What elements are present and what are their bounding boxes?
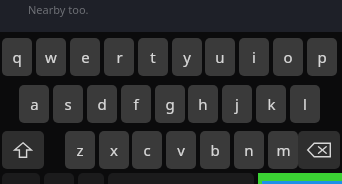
button[interactable]: e: [70, 38, 100, 76]
button[interactable]: r: [104, 38, 134, 76]
staticText: a: [30, 94, 39, 114]
button[interactable]: g: [155, 85, 185, 123]
button[interactable]: c: [132, 131, 162, 169]
button[interactable]: Backspace: [298, 131, 340, 169]
button[interactable]: b: [200, 131, 230, 169]
button[interactable]: s: [53, 85, 83, 123]
staticText: g: [165, 94, 175, 114]
staticText: t: [150, 47, 156, 67]
staticText: c: [143, 140, 151, 160]
staticText: x: [110, 140, 118, 160]
staticText: y: [183, 47, 191, 67]
button[interactable]: f: [121, 85, 151, 123]
staticText: n: [244, 140, 254, 160]
staticText: b: [210, 140, 220, 160]
staticText: w: [45, 47, 57, 67]
button[interactable]: Nearby too.: [28, 1, 118, 17]
staticText: l: [303, 94, 307, 114]
staticText: z: [76, 140, 84, 160]
button[interactable]: t: [138, 38, 168, 76]
staticText: p: [317, 47, 327, 67]
staticText: h: [198, 94, 208, 114]
staticText: f: [133, 94, 139, 114]
button[interactable]: Enter: [258, 173, 342, 184]
staticText: v: [177, 140, 185, 160]
staticText: j: [235, 94, 239, 114]
button[interactable]: a: [19, 85, 49, 123]
staticText: k: [267, 94, 276, 114]
button[interactable]: Shift: [2, 131, 44, 169]
button[interactable]: z: [65, 131, 95, 169]
staticText: q: [12, 47, 22, 67]
button[interactable]: p: [307, 38, 337, 76]
button[interactable]: w: [36, 38, 66, 76]
button[interactable]: h: [188, 85, 218, 123]
button[interactable]: k: [256, 85, 286, 123]
button[interactable]: u: [205, 38, 235, 76]
button[interactable]: q: [2, 38, 32, 76]
staticText: o: [283, 47, 293, 67]
button[interactable]: m: [268, 131, 298, 169]
button[interactable]: o: [273, 38, 303, 76]
staticText: e: [81, 47, 90, 67]
staticText: m: [276, 140, 291, 160]
staticText: i: [252, 47, 256, 67]
button[interactable]: j: [222, 85, 252, 123]
staticText: s: [64, 94, 72, 114]
staticText: Nearby too.: [28, 2, 89, 17]
staticText: u: [215, 47, 225, 67]
button[interactable]: n: [234, 131, 264, 169]
button[interactable]: x: [99, 131, 129, 169]
button[interactable]: l: [290, 85, 320, 123]
button[interactable]: v: [166, 131, 196, 169]
staticText: r: [116, 47, 123, 67]
button[interactable]: i: [239, 38, 269, 76]
staticText: d: [97, 94, 107, 114]
button[interactable]: d: [87, 85, 117, 123]
button[interactable]: y: [172, 38, 202, 76]
